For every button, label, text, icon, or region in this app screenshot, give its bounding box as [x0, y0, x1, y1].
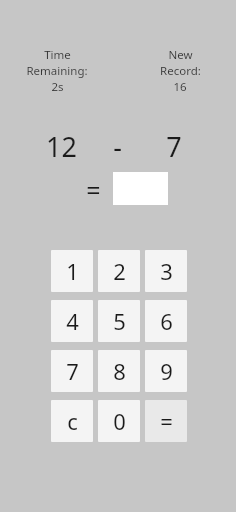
- staticText: -: [113, 128, 122, 164]
- button[interactable]: 2: [98, 250, 140, 292]
- button[interactable]: 6: [145, 300, 187, 342]
- staticText: New: [168, 47, 193, 63]
- staticText: 1: [66, 256, 79, 286]
- staticText: Record:: [160, 63, 201, 79]
- button[interactable]: c: [51, 400, 93, 442]
- staticText: =: [86, 173, 101, 207]
- staticText: 7: [166, 128, 182, 164]
- staticText: 2s: [51, 79, 64, 95]
- staticText: 6: [160, 306, 173, 336]
- staticText: =: [160, 406, 173, 436]
- button[interactable]: 7: [51, 350, 93, 392]
- button[interactable]: 4: [51, 300, 93, 342]
- staticText: 3: [160, 256, 173, 286]
- button[interactable]: 8: [98, 350, 140, 392]
- button[interactable]: 0: [98, 400, 140, 442]
- staticText: 4: [66, 306, 79, 336]
- staticText: Remaining:: [26, 63, 88, 79]
- staticText: Time: [44, 47, 71, 63]
- button[interactable]: 3: [145, 250, 187, 292]
- staticText: 0: [113, 406, 126, 436]
- staticText: c: [67, 406, 78, 436]
- button[interactable]: =: [145, 400, 187, 442]
- staticText: 5: [113, 306, 126, 336]
- staticText: 16: [173, 79, 187, 95]
- staticText: 8: [113, 356, 126, 386]
- button[interactable]: 9: [145, 350, 187, 392]
- staticText: 9: [160, 356, 173, 386]
- staticText: 7: [66, 356, 79, 386]
- staticText: 2: [113, 256, 126, 286]
- staticText: 12: [46, 128, 77, 164]
- button[interactable]: 1: [51, 250, 93, 292]
- button[interactable]: 5: [98, 300, 140, 342]
